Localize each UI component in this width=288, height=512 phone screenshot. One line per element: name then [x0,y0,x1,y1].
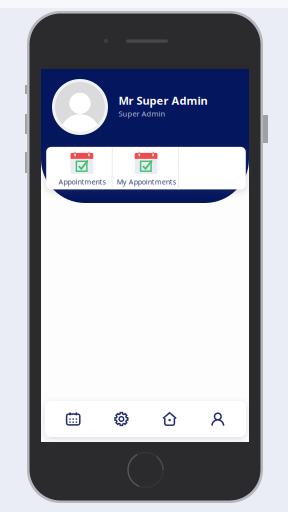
staticText: Super Admin [118,109,165,119]
button[interactable]: Home [145,401,194,437]
staticText: Mr Super Admin [118,93,207,108]
staticText: Appointments [58,177,105,186]
button[interactable]: My Appointments [114,147,178,189]
button[interactable]: Appointments [50,147,114,189]
button[interactable]: Profile [194,401,242,437]
button[interactable]: Calendar [49,401,97,437]
button[interactable]: Settings [97,401,145,437]
staticText: My Appointments [117,177,176,186]
